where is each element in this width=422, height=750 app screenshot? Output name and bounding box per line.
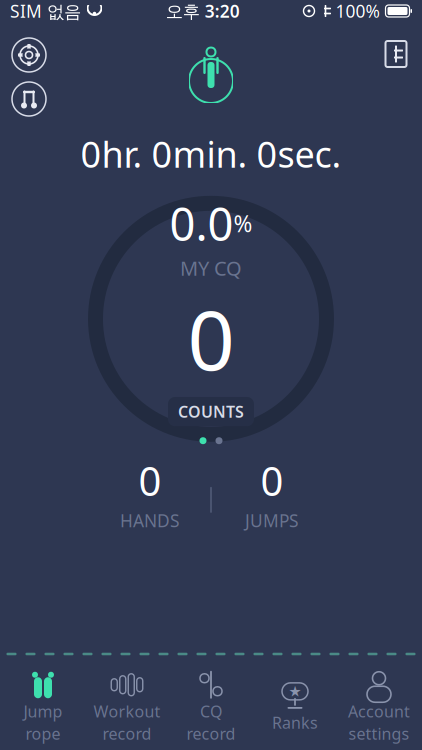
staticText: record <box>186 723 235 744</box>
staticText: HANDS <box>120 509 180 532</box>
staticText: Jump <box>23 701 62 722</box>
staticText <box>379 0 385 26</box>
staticText: 0hr. 0min. 0sec. <box>80 130 341 178</box>
staticText: SIM 없음 <box>10 0 81 22</box>
staticText: settings <box>348 723 409 744</box>
staticText: 0.0 <box>169 193 233 254</box>
staticText <box>314 0 320 26</box>
button[interactable]: Bluetooth <box>382 38 410 70</box>
button[interactable]: Jump <box>1 668 85 746</box>
staticText: Workout <box>93 701 160 722</box>
button[interactable]: Account <box>337 668 421 746</box>
staticText: record <box>102 723 151 744</box>
staticText: % <box>233 208 252 239</box>
staticText: 100% <box>330 0 379 22</box>
button[interactable]: Workout <box>85 668 169 746</box>
staticText: JUMPS <box>245 509 299 532</box>
staticText: ★ <box>288 683 301 700</box>
button[interactable]: CQ <box>169 668 253 746</box>
staticText: MY CQ <box>180 255 242 281</box>
staticText: 0 <box>260 454 283 507</box>
staticText: CQ <box>200 701 222 722</box>
staticText: Ranks <box>272 712 318 733</box>
staticText: 오후 3:20 <box>166 0 240 22</box>
button[interactable]: Settings <box>12 38 46 72</box>
button[interactable]: Music <box>12 82 46 116</box>
staticText: rope <box>25 723 60 744</box>
staticText: 0 <box>187 283 234 393</box>
staticText: 0 <box>138 454 161 507</box>
button[interactable]: ★ <box>253 668 337 746</box>
staticText: Account <box>348 701 410 722</box>
staticText: COUNTS <box>178 401 244 422</box>
